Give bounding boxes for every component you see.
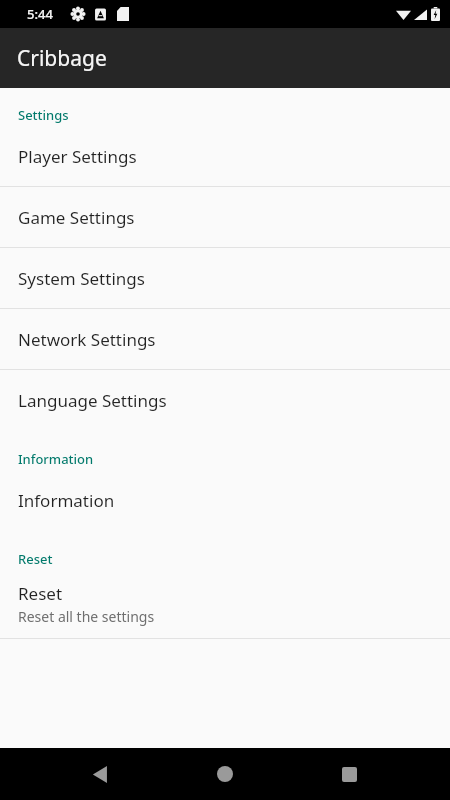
staticText: Language Settings — [18, 389, 167, 412]
staticText: Information — [18, 450, 94, 468]
staticText: Network Settings — [18, 328, 156, 351]
staticText: Reset — [18, 582, 63, 605]
staticText: Reset all the settings — [18, 607, 155, 626]
button[interactable]: System Settings — [0, 248, 450, 308]
button[interactable]: Player Settings — [0, 126, 450, 186]
staticText: Game Settings — [18, 206, 135, 229]
button[interactable]: Back — [76, 750, 124, 798]
button[interactable]: Reset — [0, 570, 450, 638]
button[interactable]: Language Settings — [0, 370, 450, 430]
staticText: 5:44 — [27, 5, 53, 23]
button[interactable]: Game Settings — [0, 187, 450, 247]
staticText: Information — [18, 489, 115, 512]
staticText: Reset — [18, 550, 53, 568]
button[interactable]: Information — [0, 470, 450, 530]
button[interactable]: Home — [201, 750, 249, 798]
staticText: System Settings — [18, 267, 145, 290]
staticText: Cribbage — [17, 44, 107, 73]
staticText: Player Settings — [18, 145, 137, 168]
button[interactable]: Recent apps — [325, 750, 373, 798]
staticText: Settings — [18, 106, 69, 124]
button[interactable]: Network Settings — [0, 309, 450, 369]
